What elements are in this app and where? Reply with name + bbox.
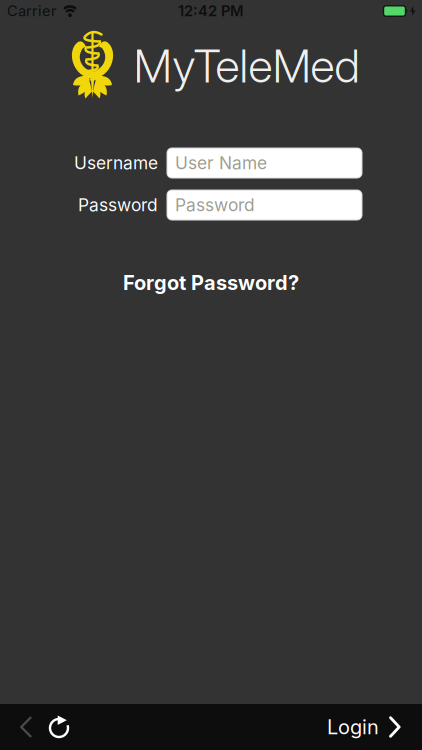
button[interactable]: Refresh: [48, 715, 70, 738]
button[interactable]: Forgot Password?: [123, 271, 299, 295]
staticText: User Name: [175, 153, 267, 173]
textField[interactable]: User Name: [175, 153, 362, 173]
staticText: MyTeleMed: [133, 39, 359, 93]
staticText: Username: [74, 153, 158, 173]
staticText: Login: [327, 715, 379, 739]
staticText: Forgot Password?: [123, 271, 299, 295]
staticText: Carrier: [7, 2, 57, 20]
staticText: Password: [175, 195, 255, 215]
button[interactable]: Back: [20, 716, 32, 737]
button[interactable]: Login: [327, 715, 401, 739]
staticText: Password: [78, 195, 158, 215]
staticText: 12:42 PM: [178, 2, 244, 20]
textField[interactable]: Password: [175, 195, 362, 215]
